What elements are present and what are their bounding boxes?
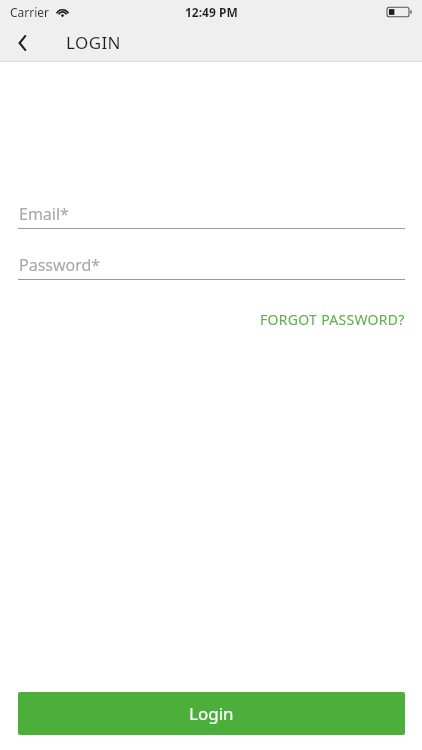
button[interactable]: Email* [0, 200, 422, 229]
button[interactable]: Login [18, 692, 405, 735]
staticText: 12:49 PM [185, 4, 238, 20]
staticText: Email* [19, 203, 69, 225]
staticText: LOGIN [66, 31, 121, 54]
button[interactable]: Password* [0, 251, 422, 280]
staticText: FORGOT PASSWORD? [260, 310, 405, 329]
button[interactable]: Back [0, 23, 44, 62]
staticText: Password* [19, 254, 101, 276]
staticText: Login [189, 702, 234, 725]
staticText: Carrier [10, 4, 50, 20]
button[interactable]: FORGOT PASSWORD? [243, 304, 422, 335]
